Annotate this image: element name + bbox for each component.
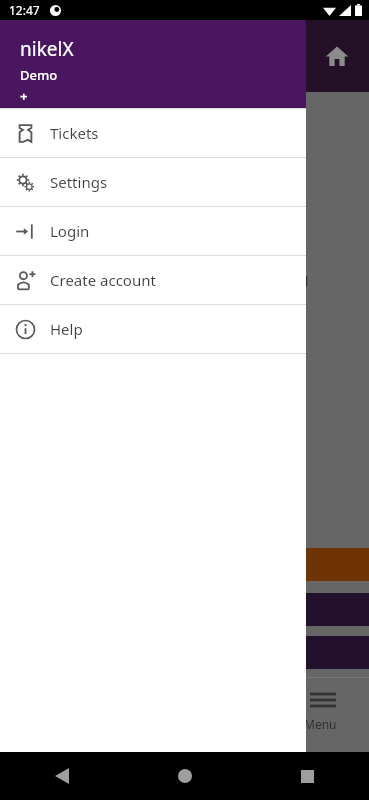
- button[interactable]: Tickets: [0, 109, 306, 157]
- staticText: Create account: [50, 270, 156, 290]
- button[interactable]: Create account: [0, 256, 306, 304]
- staticText: Menu: [304, 716, 337, 732]
- button[interactable]: Back: [0, 752, 123, 800]
- staticText: Tickets: [50, 123, 99, 143]
- staticText: Login: [50, 221, 90, 241]
- staticText: 12:47: [9, 2, 40, 18]
- button[interactable]: [290, 636, 369, 669]
- staticText: Demo: [20, 66, 58, 84]
- button[interactable]: [290, 548, 369, 581]
- staticText: Settings: [50, 172, 108, 192]
- button[interactable]: Settings: [0, 158, 306, 206]
- staticText: +: [20, 87, 28, 105]
- button[interactable]: Home: [319, 38, 355, 74]
- staticText: Pending: [250, 268, 309, 288]
- button[interactable]: [290, 593, 369, 626]
- staticText: nikelX: [20, 36, 74, 62]
- button[interactable]: Login: [0, 207, 306, 255]
- staticText: Help: [50, 319, 83, 339]
- button[interactable]: Menu: [296, 680, 356, 750]
- button[interactable]: Help: [0, 305, 306, 353]
- button[interactable]: nikelX: [0, 20, 306, 108]
- button[interactable]: Home: [123, 752, 246, 800]
- button[interactable]: Recent apps: [246, 752, 369, 800]
